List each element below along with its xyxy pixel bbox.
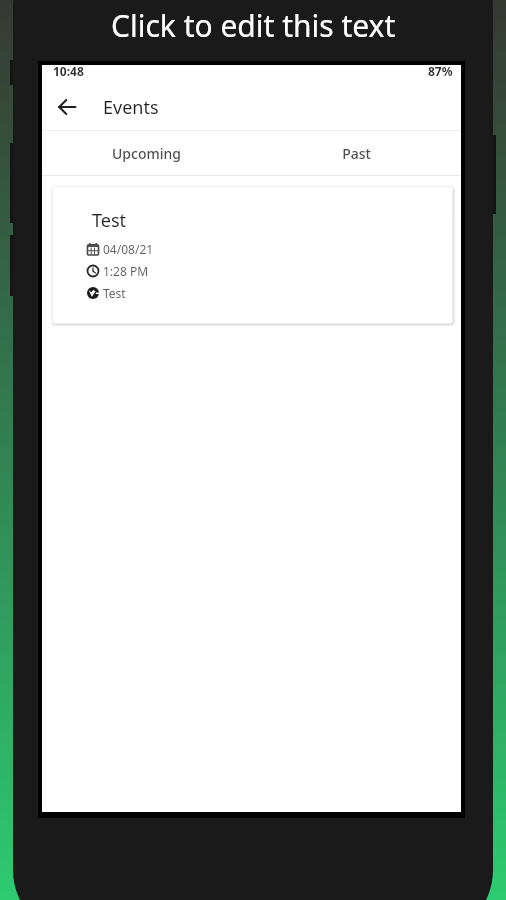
staticText: 87% xyxy=(428,63,453,79)
staticText: Events xyxy=(103,95,159,120)
button[interactable]: Back xyxy=(45,85,89,129)
staticText: Test xyxy=(92,208,127,233)
staticText: 1:28 PM xyxy=(103,263,149,277)
staticText: Upcoming xyxy=(112,144,181,163)
staticText: 10:48 xyxy=(53,63,84,79)
staticText: Click to edit this text xyxy=(111,5,396,46)
button[interactable]: Upcoming xyxy=(42,131,251,175)
staticText: 04/08/21 xyxy=(103,241,154,255)
button[interactable]: Past xyxy=(251,131,461,175)
staticText: Past xyxy=(342,144,371,163)
button[interactable]: Test xyxy=(52,186,453,324)
staticText: Test xyxy=(103,285,126,299)
